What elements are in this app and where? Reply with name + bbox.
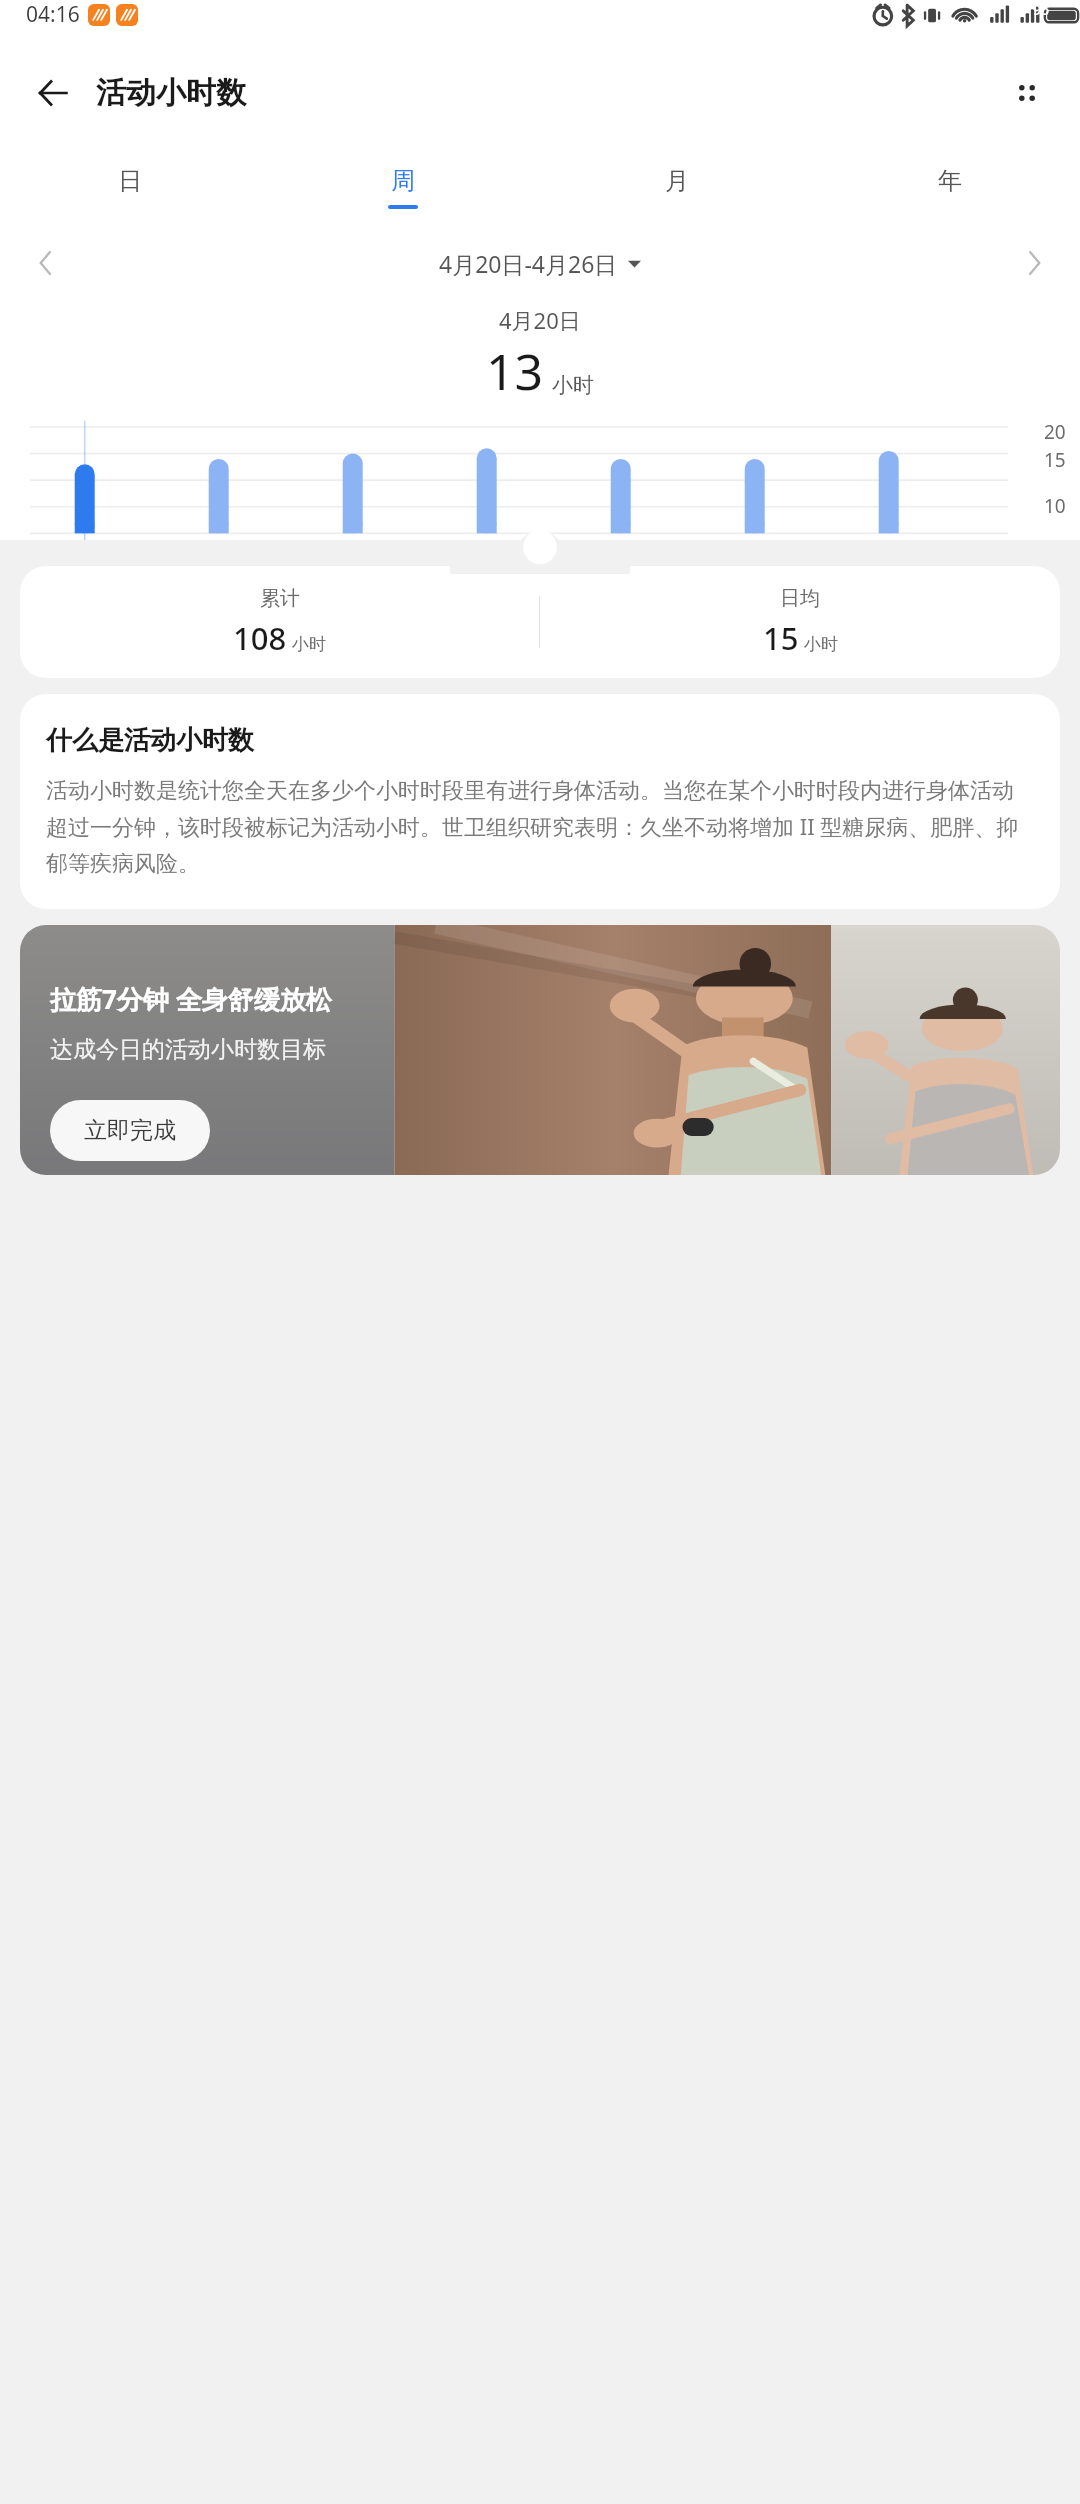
staticText: 累计 bbox=[260, 586, 300, 611]
staticText: 96 bbox=[1033, 0, 1050, 19]
staticText: 什么是活动小时数 bbox=[46, 724, 254, 757]
staticText: 4月20日 bbox=[499, 305, 581, 335]
staticText: 达成今日的活动小时数目标 bbox=[50, 1035, 326, 1064]
staticText: 活动小时数 bbox=[96, 74, 246, 112]
staticText: 月 bbox=[665, 166, 689, 196]
staticText: 立即完成 bbox=[84, 1116, 176, 1145]
staticText: 15 bbox=[763, 617, 799, 659]
staticText: 小时 bbox=[292, 634, 326, 655]
staticText: 日均 bbox=[780, 586, 820, 611]
button[interactable]: Next week bbox=[1006, 235, 1062, 291]
button[interactable]: 累计 bbox=[20, 566, 1060, 678]
staticText: 活动小时数是统计您全天在多少个小时时段里有进行身体活动。当您在某个小时时段内进行… bbox=[46, 777, 1034, 877]
button[interactable]: 日 bbox=[96, 162, 164, 213]
button[interactable]: 拉筋7分钟 全身舒缓放松 bbox=[20, 925, 1060, 1175]
staticText: 108 bbox=[233, 617, 287, 659]
staticText: 10 bbox=[1044, 493, 1066, 519]
staticText: 15 bbox=[1044, 447, 1066, 473]
staticText: 13 bbox=[486, 337, 544, 405]
staticText: 4月20日-4月26日 bbox=[439, 248, 618, 279]
button[interactable]: 4月20日-4月26日 bbox=[74, 242, 1006, 285]
button[interactable]: Back bbox=[22, 62, 84, 124]
button[interactable]: 年 bbox=[916, 162, 984, 213]
staticText: 04:16 bbox=[26, 0, 80, 29]
staticText: 小时 bbox=[804, 634, 838, 655]
button[interactable]: More options bbox=[996, 62, 1058, 124]
staticText: 小时 bbox=[552, 372, 594, 398]
button[interactable]: 周 bbox=[369, 162, 437, 213]
staticText: 周 bbox=[391, 166, 415, 196]
staticText: 年 bbox=[938, 166, 962, 196]
staticText: 拉筋7分钟 全身舒缓放松 bbox=[50, 981, 332, 1017]
button[interactable]: 立即完成 bbox=[50, 1100, 210, 1161]
staticText: 日 bbox=[118, 166, 142, 196]
button[interactable]: 月 bbox=[643, 162, 711, 213]
staticText: 20 bbox=[1044, 419, 1066, 445]
button[interactable]: Previous week bbox=[18, 235, 74, 291]
button[interactable]: 什么是活动小时数 bbox=[20, 694, 1060, 909]
